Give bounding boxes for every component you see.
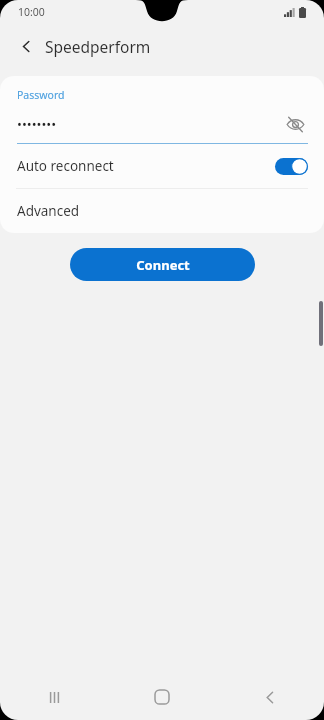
button[interactable]: Show password [280, 109, 310, 139]
button[interactable]: Back [12, 32, 40, 60]
button[interactable]: Advanced [0, 189, 324, 233]
staticText: •••••••• [17, 115, 280, 133]
button[interactable]: Auto reconnect toggle [275, 158, 308, 175]
button[interactable]: Auto reconnect [0, 144, 324, 188]
staticText: Speedperform [45, 36, 151, 57]
button[interactable]: Home [108, 674, 216, 720]
staticText: 10:00 [18, 5, 45, 19]
staticText: Auto reconnect [17, 157, 275, 175]
button[interactable]: Connect [70, 248, 255, 281]
button[interactable]: Password [0, 76, 324, 144]
staticText: Password [17, 88, 65, 102]
button[interactable]: Recent apps [0, 674, 108, 720]
staticText: Advanced [17, 202, 80, 220]
staticText: Connect [136, 256, 190, 274]
button[interactable]: Back [216, 674, 324, 720]
